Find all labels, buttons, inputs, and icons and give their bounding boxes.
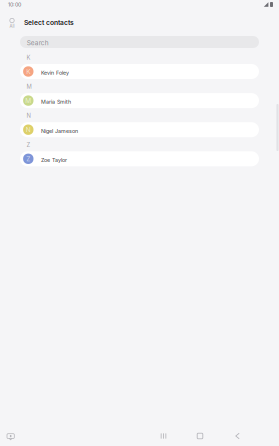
button[interactable]: N (20, 122, 259, 137)
staticText: Search (27, 39, 49, 47)
staticText: Z (26, 141, 30, 148)
staticText: Zoe Taylor (41, 157, 67, 163)
staticText: N (26, 126, 31, 134)
staticText: K (26, 67, 30, 75)
staticText: K (26, 54, 30, 61)
button[interactable]: K (20, 64, 259, 79)
button[interactable]: Search (20, 36, 259, 48)
staticText: Z (26, 155, 30, 163)
staticText: Nigel Jameson (41, 128, 78, 134)
button[interactable]: Back (0, 429, 247, 443)
staticText: M (26, 83, 31, 90)
button[interactable]: Z (20, 151, 259, 166)
button[interactable]: Select all contacts (4, 16, 20, 30)
staticText: Select contacts (24, 18, 74, 27)
staticText: All (9, 23, 14, 29)
button[interactable]: Home (0, 429, 210, 443)
staticText: M (25, 97, 31, 104)
staticText: 10:00 (8, 1, 21, 8)
button[interactable]: Recent apps (0, 429, 173, 443)
staticText: Kevin Foley (41, 70, 69, 76)
button[interactable]: Hide keyboard (0, 429, 14, 440)
staticText: Maria Smith (41, 99, 71, 105)
button[interactable]: M (20, 93, 259, 108)
staticText: N (26, 112, 30, 119)
